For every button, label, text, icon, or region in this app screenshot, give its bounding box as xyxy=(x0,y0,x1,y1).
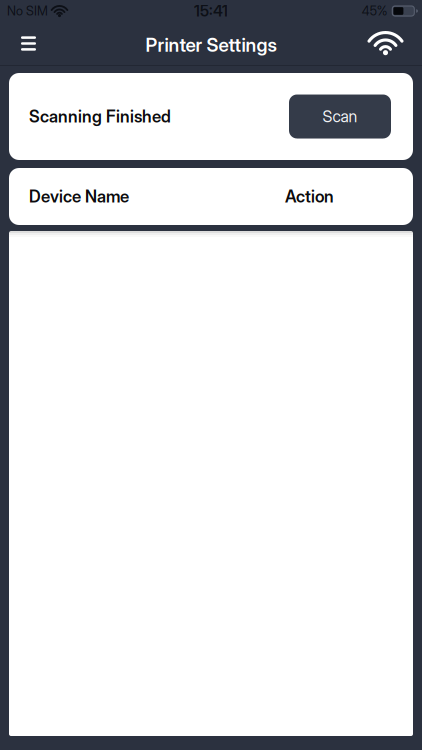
staticText: Printer Settings xyxy=(145,34,276,56)
staticText: Device Name xyxy=(29,186,129,207)
staticText: Scan xyxy=(322,107,357,126)
staticText: Scanning Finished xyxy=(29,106,171,127)
staticText: Action xyxy=(285,186,334,207)
button[interactable]: Wi-Fi xyxy=(368,24,422,65)
staticText: No SIM xyxy=(7,3,48,19)
button[interactable]: Scan xyxy=(289,94,391,138)
button[interactable]: Menu xyxy=(0,24,36,65)
staticText: 15:41 xyxy=(194,2,228,20)
staticText: 45% xyxy=(362,3,388,19)
